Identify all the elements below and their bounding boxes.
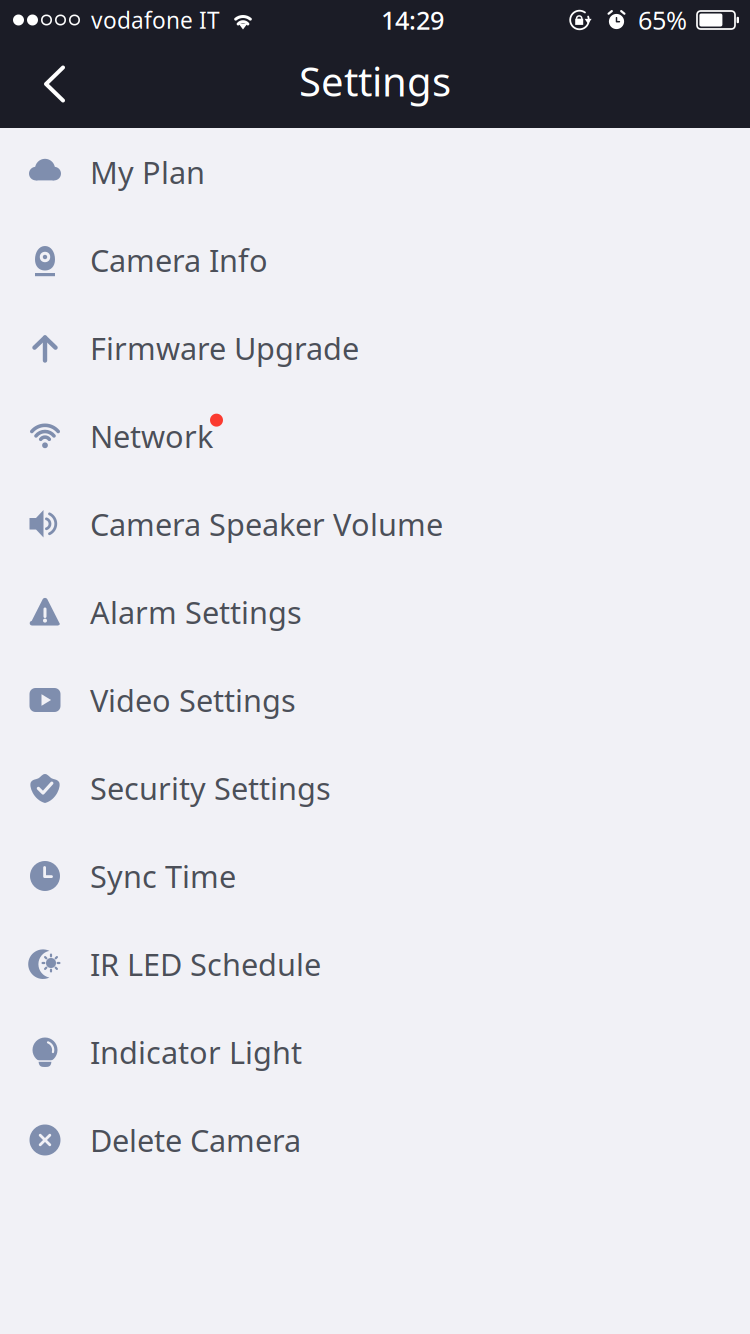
staticText: Firmware Upgrade bbox=[90, 328, 359, 368]
staticText: vodafone IT bbox=[91, 5, 220, 35]
staticText: Security Settings bbox=[90, 768, 331, 808]
staticText: Alarm Settings bbox=[90, 592, 302, 632]
button[interactable]: Network bbox=[0, 392, 750, 480]
staticText: Network bbox=[90, 416, 213, 456]
staticText: Settings bbox=[299, 54, 451, 107]
staticText: 14:29 bbox=[381, 3, 444, 37]
button[interactable]: Video Settings bbox=[0, 656, 750, 744]
button[interactable]: Firmware Upgrade bbox=[0, 304, 750, 392]
button[interactable]: Back bbox=[0, 46, 108, 122]
button[interactable]: Security Settings bbox=[0, 744, 750, 832]
button[interactable]: Sync Time bbox=[0, 832, 750, 920]
button[interactable]: Indicator Light bbox=[0, 1008, 750, 1096]
staticText: My Plan bbox=[90, 152, 205, 192]
staticText: 65% bbox=[638, 3, 687, 37]
staticText: Delete Camera bbox=[90, 1120, 301, 1160]
button[interactable]: Camera Info bbox=[0, 216, 750, 304]
button[interactable]: Camera Speaker Volume bbox=[0, 480, 750, 568]
button[interactable]: Alarm Settings bbox=[0, 568, 750, 656]
button[interactable]: My Plan bbox=[0, 128, 750, 216]
button[interactable]: IR LED Schedule bbox=[0, 920, 750, 1008]
staticText: Camera Speaker Volume bbox=[90, 504, 443, 544]
button[interactable]: Delete Camera bbox=[0, 1096, 750, 1184]
staticText: IR LED Schedule bbox=[90, 944, 321, 984]
staticText: Indicator Light bbox=[90, 1032, 302, 1072]
staticText: Camera Info bbox=[90, 240, 268, 280]
staticText: Video Settings bbox=[90, 680, 296, 720]
staticText: Sync Time bbox=[90, 856, 236, 896]
